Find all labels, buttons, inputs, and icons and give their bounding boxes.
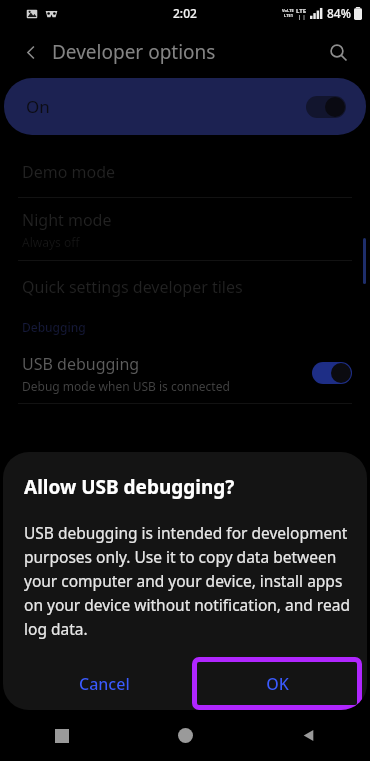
button[interactable]: Demo mode: [0, 147, 370, 197]
staticText: Debug mode when USB is connected: [22, 378, 230, 394]
staticText: Allow USB debugging?: [24, 474, 235, 500]
button[interactable]: USB debugging: [0, 343, 370, 403]
staticText: 84%: [327, 5, 351, 21]
staticText: LTE1: [284, 13, 293, 18]
button[interactable]: Cancel: [65, 663, 144, 705]
staticText: VoLTE: [282, 8, 294, 13]
staticText: Debugging: [22, 319, 86, 335]
button[interactable]: Back: [14, 35, 48, 69]
staticText: USB debugging is intended for developmen…: [24, 522, 351, 639]
staticText: 2:02: [173, 5, 197, 21]
staticText: LTE: [296, 7, 307, 15]
button[interactable]: Recents: [0, 710, 124, 761]
button[interactable]: On: [4, 78, 366, 135]
button[interactable]: Back: [247, 710, 370, 761]
staticText: On: [26, 95, 50, 118]
button[interactable]: Quick settings developer tiles: [0, 261, 370, 313]
staticText: Demo mode: [22, 161, 116, 183]
staticText: Always off: [22, 234, 80, 250]
button[interactable]: Night mode: [0, 198, 370, 260]
button[interactable]: OK: [192, 657, 362, 710]
staticText: Cancel: [79, 673, 130, 695]
staticText: Quick settings developer tiles: [22, 276, 243, 298]
button[interactable]: Home: [124, 710, 247, 761]
staticText: OK: [266, 673, 289, 695]
button[interactable]: Search: [318, 32, 358, 72]
staticText: Developer options: [52, 39, 216, 65]
staticText: USB debugging: [22, 353, 140, 375]
staticText: Night mode: [22, 209, 112, 231]
